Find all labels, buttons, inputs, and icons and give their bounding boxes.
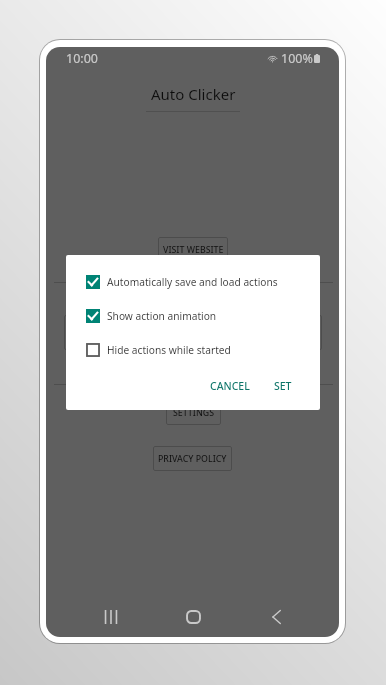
staticText: Hide actions while started [107, 343, 231, 357]
button[interactable]: Back [259, 600, 293, 634]
staticText: VISIT WEBSITE [163, 244, 224, 256]
button[interactable]: PRIVACY POLICY [153, 446, 232, 471]
button[interactable]: Automatically save and load actions [66, 265, 320, 299]
staticText: Auto Clicker [151, 84, 236, 104]
staticText: Automatically save and load actions [107, 275, 278, 289]
staticText: CANCEL [210, 379, 250, 393]
staticText: PRIVACY POLICY [158, 453, 227, 465]
button[interactable]: Recent apps [94, 600, 128, 634]
button[interactable]: Home [176, 600, 210, 634]
staticText: 10:00 [66, 50, 98, 67]
staticText: SETTINGS [173, 407, 214, 419]
button[interactable]: Show action animation [66, 299, 320, 333]
button[interactable]: SETTINGS [166, 400, 221, 425]
button[interactable]: CANCEL [202, 373, 258, 399]
button[interactable]: VISIT WEBSITE [158, 237, 228, 262]
staticText: 100% [281, 50, 313, 67]
button[interactable]: Hide actions while started [66, 333, 320, 367]
staticText: SET [274, 379, 292, 393]
button[interactable]: SET [266, 373, 300, 399]
staticText: Show action animation [107, 309, 217, 323]
